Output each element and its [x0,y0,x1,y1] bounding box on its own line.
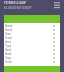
staticText: Team [5,36,53,40]
staticText: Tags [5,56,53,60]
button[interactable]: Type [4,44,60,48]
button[interactable]: Menu [54,2,60,9]
button[interactable] [4,15,60,23]
staticText: A LONGTERM SURVEY [4,6,32,10]
staticText: Date [5,32,53,36]
button[interactable]: Rank [4,48,60,52]
staticText: Rank [5,48,53,52]
button[interactable]: Done [4,60,60,64]
button[interactable]: Date [4,32,60,36]
button[interactable]: Email [4,28,60,32]
button[interactable]: Name [4,24,60,28]
staticText: PIONEER 4 CAMP [4,1,26,5]
staticText: Area [5,40,53,44]
staticText: Done [5,60,53,64]
staticText: Name [5,24,53,28]
button[interactable]: Tags [4,56,60,60]
button[interactable]: Note [4,52,60,56]
staticText: Note [5,52,53,56]
button[interactable]: Area [4,40,60,44]
staticText: Email [5,28,53,32]
staticText: Type [5,44,53,48]
button[interactable]: Team [4,36,60,40]
